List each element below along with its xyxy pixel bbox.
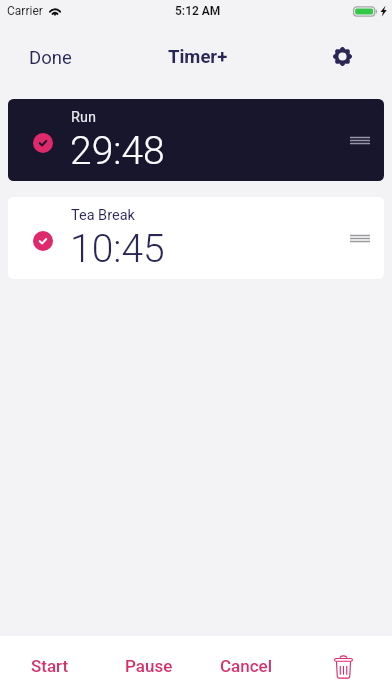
staticText: Timer+ (168, 46, 228, 68)
button[interactable]: Reorder (346, 126, 374, 154)
button[interactable]: Toggle timer (8, 197, 384, 279)
button[interactable]: Delete (325, 648, 362, 685)
staticText: Done (29, 47, 72, 69)
button[interactable]: Start (16, 646, 84, 686)
button[interactable]: Cancel (212, 646, 280, 686)
staticText: Run (71, 109, 96, 126)
staticText: 5:12 AM (175, 4, 221, 18)
staticText: Cancel (220, 656, 273, 676)
button[interactable]: Toggle timer (33, 231, 53, 251)
button[interactable]: Reorder (346, 224, 374, 252)
staticText: Tea Break (71, 207, 135, 224)
button[interactable]: Pause (115, 646, 183, 686)
staticText: Pause (125, 656, 173, 676)
button[interactable]: Done (17, 39, 84, 77)
staticText: Carrier (7, 4, 43, 18)
staticText: Start (31, 656, 69, 676)
button[interactable]: Settings (328, 42, 357, 71)
staticText: 10:45 (70, 226, 165, 272)
button[interactable]: Toggle timer (8, 99, 384, 181)
staticText: 29:48 (70, 128, 165, 174)
button[interactable]: Toggle timer (33, 133, 53, 153)
